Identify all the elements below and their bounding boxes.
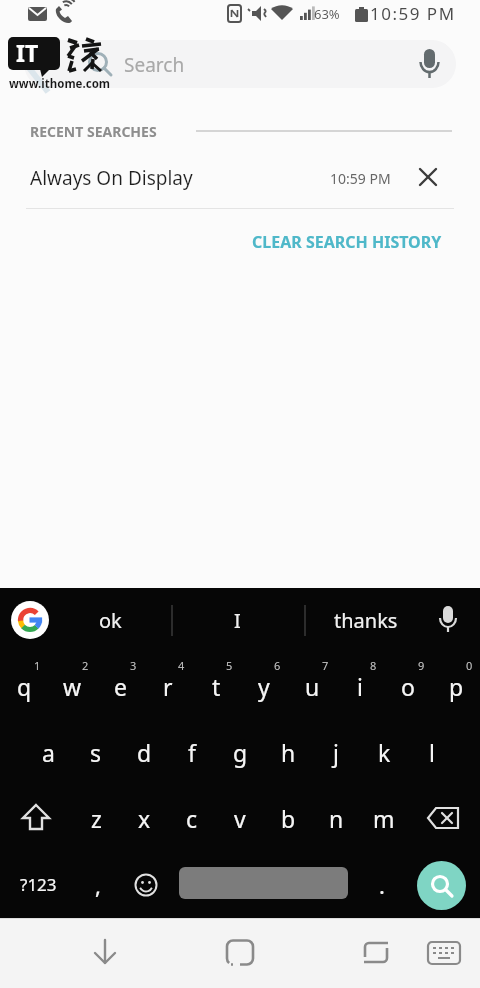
button[interactable]: q [0, 652, 48, 719]
staticText: , [95, 870, 101, 900]
staticText: b [281, 803, 296, 834]
button[interactable] [0, 785, 72, 851]
staticText: c [186, 803, 198, 834]
staticText: 10:59 PM [370, 2, 456, 25]
staticText: r [163, 671, 173, 702]
button[interactable]: b [264, 785, 312, 851]
staticText: o [401, 671, 415, 702]
staticText: d [137, 737, 152, 768]
staticText: w [63, 671, 82, 702]
button[interactable] [179, 867, 348, 899]
button[interactable]: g [216, 719, 264, 785]
button[interactable] [160, 918, 320, 988]
button[interactable]: Search [24, 40, 456, 88]
button[interactable]: h [264, 719, 312, 785]
button[interactable] [417, 861, 466, 910]
button[interactable] [408, 785, 480, 851]
staticText: 0 [466, 658, 473, 673]
button[interactable]: , [76, 851, 120, 918]
button[interactable]: CLEAR SEARCH HISTORY [252, 231, 442, 253]
staticText: CLEAR SEARCH HISTORY [252, 231, 442, 253]
staticText: 8 [370, 658, 377, 673]
staticText: 63% [314, 5, 340, 23]
staticText: 5 [226, 658, 233, 673]
button[interactable] [120, 851, 172, 918]
button[interactable]: ok [84, 588, 136, 652]
staticText: 9 [418, 658, 425, 673]
button[interactable]: r [144, 652, 192, 719]
button[interactable]: a [24, 719, 72, 785]
button[interactable]: Always On Display [0, 146, 480, 209]
staticText: z [91, 803, 102, 834]
staticText: l [429, 737, 435, 768]
button[interactable]: p [432, 652, 480, 719]
staticText: q [17, 671, 32, 702]
staticText: s [90, 737, 102, 768]
staticText: 7 [322, 658, 329, 673]
staticText: ok [99, 607, 122, 634]
button[interactable] [320, 918, 480, 988]
button[interactable] [0, 918, 160, 988]
button[interactable]: z [72, 785, 120, 851]
staticText: 6 [274, 658, 281, 673]
staticText: k [378, 737, 391, 768]
staticText: u [305, 671, 320, 702]
staticText: j [333, 737, 339, 768]
button[interactable]: l [408, 719, 456, 785]
button[interactable]: x [120, 785, 168, 851]
staticText: f [188, 737, 196, 768]
staticText: g [233, 737, 248, 768]
button[interactable]: d [120, 719, 168, 785]
staticText: RECENT SEARCHES [30, 122, 157, 141]
staticText: x [138, 803, 151, 834]
staticText: www.ithome.com [9, 76, 111, 92]
button[interactable]: m [360, 785, 408, 851]
staticText: 10:59 PM [330, 169, 391, 188]
staticText: e [114, 671, 127, 702]
button[interactable]: j [312, 719, 360, 785]
staticText: m [373, 803, 395, 834]
button[interactable]: o [384, 652, 432, 719]
button[interactable] [11, 601, 49, 639]
staticText: p [449, 671, 464, 702]
button[interactable]: s [72, 719, 120, 785]
staticText: 4 [178, 658, 185, 673]
staticText: ?123 [20, 873, 57, 896]
staticText: 1 [34, 658, 41, 673]
button[interactable]: u [288, 652, 336, 719]
button[interactable]: t [192, 652, 240, 719]
staticText: Search [124, 52, 185, 78]
button[interactable]: e [96, 652, 144, 719]
button[interactable]: thanks [312, 588, 420, 652]
staticText: h [281, 737, 296, 768]
button[interactable]: c [168, 785, 216, 851]
staticText: I [234, 607, 241, 634]
button[interactable]: w [48, 652, 96, 719]
staticText: i [357, 671, 363, 702]
staticText: t [212, 671, 221, 702]
staticText: n [329, 803, 344, 834]
staticText: thanks [334, 607, 398, 634]
staticText: Always On Display [30, 165, 193, 191]
staticText: IT [16, 37, 39, 68]
button[interactable]: ?123 [0, 851, 76, 918]
staticText: y [258, 671, 270, 702]
button[interactable]: y [240, 652, 288, 719]
staticText: . [379, 870, 385, 900]
staticText: v [234, 803, 246, 834]
button[interactable]: n [312, 785, 360, 851]
button[interactable]: . [360, 851, 404, 918]
button[interactable]: f [168, 719, 216, 785]
staticText: 3 [130, 658, 137, 673]
button[interactable]: v [216, 785, 264, 851]
staticText: 2 [82, 658, 89, 673]
button[interactable]: i [336, 652, 384, 719]
staticText: a [42, 737, 55, 768]
button[interactable]: k [360, 719, 408, 785]
button[interactable]: I [212, 588, 263, 652]
